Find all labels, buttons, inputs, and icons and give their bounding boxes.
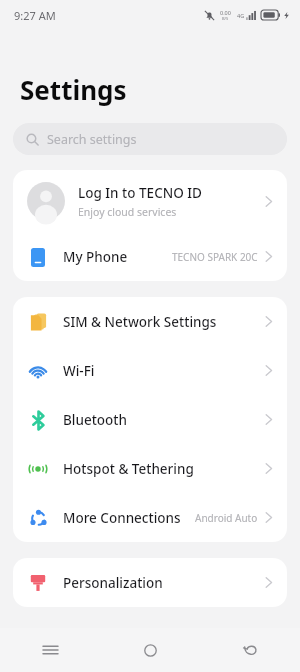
staticText: 0.00 (220, 9, 231, 16)
button[interactable]: Search settings (13, 123, 287, 155)
button[interactable]: SIM & Network Settings (13, 297, 287, 346)
staticText: Search settings (47, 131, 137, 148)
staticText: Bluetooth (63, 411, 127, 429)
staticText: SIM & Network Settings (63, 313, 217, 331)
staticText: Settings (20, 72, 127, 107)
staticText: Enjoy cloud services (78, 205, 177, 219)
staticText: Log In to TECNO ID (78, 184, 202, 202)
button[interactable]: Hotspot & Tethering (13, 444, 287, 493)
button[interactable]: My Phone (13, 232, 287, 281)
staticText: Personalization (63, 574, 163, 592)
button[interactable]: Wi-Fi (13, 346, 287, 395)
staticText: 9:27 AM (14, 8, 56, 23)
staticText: TECNO SPARK 20C (172, 250, 258, 264)
button[interactable]: Bluetooth (13, 395, 287, 444)
staticText: Hotspot & Tethering (63, 460, 194, 478)
staticText: My Phone (63, 248, 128, 266)
button[interactable]: Personalization (13, 558, 287, 607)
staticText: B/S (222, 16, 229, 21)
staticText: More Connections (63, 509, 181, 527)
button[interactable]: More Connections (13, 493, 287, 542)
button[interactable]: Back (200, 628, 300, 672)
staticText: 4G (237, 12, 245, 19)
button[interactable]: Recent apps (0, 628, 100, 672)
button[interactable]: Log In to TECNO ID (13, 170, 287, 232)
staticText: Android Auto (195, 511, 258, 525)
staticText: Wi-Fi (63, 362, 95, 380)
button[interactable]: Home (100, 628, 200, 672)
